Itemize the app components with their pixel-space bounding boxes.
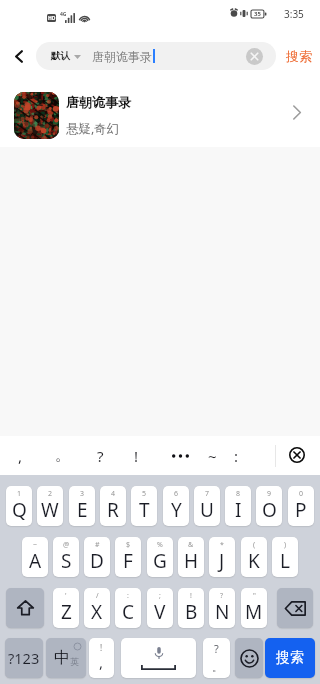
staticText: R	[107, 497, 119, 523]
staticText: J	[219, 548, 225, 574]
staticText: 搜索	[286, 48, 312, 64]
staticText: T	[139, 497, 150, 523]
button[interactable]: Period	[203, 638, 230, 678]
button[interactable]: 0	[288, 486, 314, 526]
button[interactable]: 默认	[36, 42, 276, 70]
button[interactable]	[161, 436, 199, 475]
button[interactable]: 搜索	[280, 43, 318, 69]
staticText: S	[61, 548, 72, 574]
staticText: !	[134, 446, 139, 466]
button[interactable]: Back	[5, 43, 32, 70]
staticText: 4G	[60, 11, 67, 18]
staticText: !	[100, 642, 103, 653]
button[interactable]: Symbols	[5, 638, 43, 678]
staticText: 5	[142, 489, 147, 499]
staticText: W	[41, 497, 59, 523]
staticText: 中	[54, 648, 70, 668]
staticText: 6	[174, 489, 179, 499]
button[interactable]: 3	[69, 486, 95, 526]
staticText: 7	[205, 489, 210, 499]
button[interactable]: &	[178, 537, 204, 577]
button[interactable]: 9	[256, 486, 282, 526]
button[interactable]: Comma	[89, 638, 114, 678]
button[interactable]: 8	[225, 486, 251, 526]
button[interactable]: Hide keyboard	[286, 444, 307, 465]
button[interactable]: Space	[121, 638, 196, 678]
button[interactable]: 1	[6, 486, 32, 526]
button[interactable]: @	[53, 537, 79, 577]
button[interactable]: 2	[37, 486, 63, 526]
button[interactable]: :	[115, 588, 141, 628]
staticText: 1	[17, 489, 22, 499]
button[interactable]: Clear text	[244, 46, 264, 66]
button[interactable]: Backspace	[277, 588, 313, 628]
button[interactable]: "	[241, 588, 267, 628]
staticText: 搜索	[276, 649, 304, 667]
button[interactable]: Switch language	[46, 638, 86, 678]
staticText: ?	[220, 591, 224, 601]
button[interactable]: ~	[193, 436, 231, 475]
staticText: Q	[12, 497, 27, 523]
button[interactable]: 6	[163, 486, 189, 526]
button[interactable]: Shift	[6, 588, 44, 628]
staticText: 唐朝诡事录	[92, 49, 152, 64]
staticText: Y	[171, 497, 182, 523]
button[interactable]: (	[241, 537, 267, 577]
staticText: X	[91, 599, 103, 625]
staticText: D	[90, 548, 104, 574]
button[interactable]: $	[115, 537, 141, 577]
staticText: K	[248, 548, 260, 574]
button[interactable]: 5	[131, 486, 157, 526]
staticText: :	[127, 591, 129, 601]
button[interactable]: Search	[265, 638, 315, 678]
staticText: 唐朝诡事录	[66, 94, 131, 110]
staticText: 3	[80, 489, 85, 499]
button[interactable]: Emoji	[235, 638, 263, 678]
button[interactable]: ?	[81, 436, 119, 475]
staticText: )	[284, 540, 287, 550]
staticText: M	[245, 599, 263, 625]
staticText: H	[184, 548, 199, 574]
staticText: ;	[159, 591, 161, 601]
button[interactable]: '	[53, 588, 79, 628]
button[interactable]: %	[147, 537, 173, 577]
button[interactable]: 7	[194, 486, 220, 526]
staticText: $	[126, 540, 131, 550]
staticText: 2	[48, 489, 53, 499]
staticText: E	[77, 497, 88, 523]
staticText: 4	[111, 489, 116, 499]
button[interactable]: 4	[100, 486, 126, 526]
staticText: 35	[254, 10, 261, 18]
staticText: HD	[48, 15, 56, 22]
staticText: ,	[99, 652, 104, 672]
button[interactable]: !	[178, 588, 204, 628]
button[interactable]: :	[217, 436, 255, 475]
staticText: ?	[214, 641, 219, 656]
staticText: 0	[299, 489, 304, 499]
other: Open detail	[289, 104, 305, 120]
button[interactable]: #	[84, 537, 110, 577]
staticText: ~	[208, 446, 217, 466]
staticText: B	[185, 599, 198, 625]
staticText: N	[215, 599, 230, 625]
button[interactable]: )	[272, 537, 298, 577]
staticText: P	[295, 497, 307, 523]
staticText: ~	[33, 540, 38, 550]
staticText: 。	[212, 661, 222, 674]
staticText: C	[122, 599, 135, 625]
button[interactable]: 。	[43, 436, 81, 475]
button[interactable]: !	[117, 436, 155, 475]
staticText: ?123	[8, 648, 40, 668]
staticText: 3:35	[284, 7, 304, 21]
button[interactable]: ;	[147, 588, 173, 628]
button[interactable]: ,	[1, 436, 39, 475]
button[interactable]: *	[209, 537, 235, 577]
button[interactable]: ?	[209, 588, 235, 628]
staticText: %	[157, 540, 163, 550]
staticText: U	[200, 497, 214, 523]
button[interactable]: ~	[22, 537, 48, 577]
button[interactable]: /	[84, 588, 110, 628]
staticText: *	[220, 540, 224, 550]
staticText: 。	[55, 446, 70, 465]
button[interactable]: 唐朝诡事录	[0, 78, 320, 146]
